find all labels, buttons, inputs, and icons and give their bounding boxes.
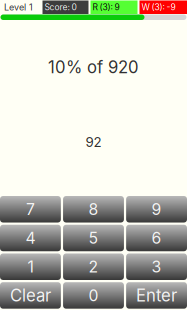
staticText: 7 <box>26 200 35 219</box>
staticText: Level 1 <box>4 2 33 13</box>
staticText: 2 <box>88 257 98 276</box>
staticText: 8 <box>88 200 98 219</box>
staticText: 10% of 920 <box>48 57 139 77</box>
staticText: R (3): 9 <box>92 2 119 12</box>
staticText: 9 <box>152 200 162 219</box>
button[interactable]: 3 <box>126 253 187 280</box>
button[interactable]: 0 <box>63 282 124 309</box>
staticText: Score: 0 <box>44 2 76 12</box>
button[interactable]: 8 <box>63 196 124 222</box>
staticText: 4 <box>25 228 35 247</box>
staticText: Clear <box>10 285 51 306</box>
button[interactable]: Clear <box>0 282 61 309</box>
staticText: 3 <box>152 257 162 276</box>
staticText: 5 <box>88 228 98 247</box>
button[interactable]: Enter <box>126 282 187 309</box>
button[interactable]: 6 <box>126 225 187 251</box>
button[interactable]: 1 <box>0 253 61 280</box>
button[interactable]: 5 <box>63 225 124 251</box>
staticText: Enter <box>136 285 177 306</box>
staticText: 92 <box>85 134 101 150</box>
staticText: W (3): -9 <box>141 2 175 12</box>
button[interactable]: 7 <box>0 196 61 222</box>
staticText: 0 <box>88 286 98 305</box>
button[interactable]: 4 <box>0 225 61 251</box>
button[interactable]: 9 <box>126 196 187 222</box>
staticText: 6 <box>152 228 162 247</box>
staticText: 1 <box>27 257 33 276</box>
button[interactable]: 2 <box>63 253 124 280</box>
